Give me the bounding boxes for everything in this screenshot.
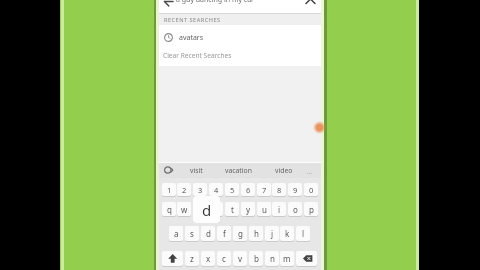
button[interactable]: f bbox=[217, 226, 231, 241]
staticText: g bbox=[238, 228, 243, 239]
button[interactable]: 6 bbox=[241, 183, 255, 196]
staticText: a guy dancing in my car bbox=[176, 0, 255, 5]
staticText: vacation bbox=[225, 166, 252, 175]
button[interactable]: j bbox=[265, 226, 279, 241]
button[interactable]: g bbox=[233, 226, 247, 241]
staticText: e bbox=[198, 204, 203, 215]
button[interactable] bbox=[304, 0, 317, 8]
button[interactable]: video bbox=[270, 163, 298, 178]
staticText: k bbox=[285, 228, 290, 239]
staticText: b bbox=[254, 253, 259, 264]
button[interactable] bbox=[159, 25, 321, 45]
staticText: 8 bbox=[277, 185, 282, 195]
button[interactable]: b bbox=[249, 251, 263, 266]
button[interactable]: i bbox=[272, 202, 286, 216]
staticText: c bbox=[222, 253, 226, 264]
button[interactable] bbox=[159, 45, 321, 66]
button[interactable]: v bbox=[233, 251, 247, 266]
staticText: 5 bbox=[230, 185, 235, 195]
staticText: n bbox=[270, 253, 275, 264]
button[interactable]: 0 bbox=[304, 183, 318, 196]
staticText: 2 bbox=[182, 185, 187, 195]
staticText: l bbox=[302, 228, 305, 239]
staticText: p bbox=[309, 204, 314, 215]
button[interactable] bbox=[163, 0, 175, 8]
button[interactable]: 5 bbox=[225, 183, 239, 196]
staticText: f bbox=[223, 228, 226, 239]
button[interactable]: ... bbox=[300, 163, 318, 178]
button[interactable]: p bbox=[304, 202, 318, 216]
staticText: m bbox=[283, 253, 291, 264]
staticText: 4 bbox=[214, 185, 219, 195]
button[interactable]: 1 bbox=[162, 183, 176, 196]
button[interactable]: s bbox=[185, 226, 199, 241]
staticText: h bbox=[254, 228, 259, 239]
button[interactable]: c bbox=[217, 251, 231, 266]
button[interactable]: t bbox=[225, 202, 239, 216]
button[interactable]: r bbox=[209, 202, 223, 216]
staticText: x bbox=[206, 253, 211, 264]
button[interactable]: 8 bbox=[272, 183, 286, 196]
button[interactable] bbox=[296, 251, 317, 266]
staticText: z bbox=[190, 253, 194, 264]
button[interactable]: d bbox=[201, 226, 215, 241]
button[interactable]: o bbox=[288, 202, 302, 216]
staticText: 9 bbox=[293, 185, 298, 195]
staticText: y bbox=[246, 204, 251, 215]
staticText: d bbox=[202, 200, 212, 220]
staticText: 3 bbox=[198, 185, 203, 195]
staticText: a bbox=[174, 228, 179, 239]
staticText: 7 bbox=[262, 185, 267, 195]
staticText: d bbox=[206, 228, 211, 239]
staticText: u bbox=[262, 204, 267, 215]
button[interactable]: 7 bbox=[257, 183, 271, 196]
staticText: s bbox=[190, 228, 194, 239]
staticText: ... bbox=[307, 167, 312, 175]
button[interactable]: 3 bbox=[193, 183, 207, 196]
staticText: video bbox=[275, 166, 293, 175]
staticText: v bbox=[238, 253, 243, 264]
staticText: 1 bbox=[167, 185, 172, 195]
button[interactable]: n bbox=[265, 251, 279, 266]
staticText: w bbox=[181, 204, 188, 215]
staticText: visit bbox=[190, 166, 203, 175]
button[interactable]: x bbox=[201, 251, 215, 266]
staticText: i bbox=[278, 204, 281, 215]
button[interactable]: y bbox=[241, 202, 255, 216]
staticText: t bbox=[231, 204, 234, 215]
button[interactable]: 4 bbox=[209, 183, 223, 196]
button[interactable]: 9 bbox=[288, 183, 302, 196]
button[interactable]: m bbox=[280, 251, 294, 266]
button[interactable]: k bbox=[280, 226, 294, 241]
staticText: 0 bbox=[309, 185, 314, 195]
button[interactable]: a bbox=[169, 226, 183, 241]
button[interactable]: 2 bbox=[177, 183, 191, 196]
button[interactable] bbox=[162, 251, 183, 266]
staticText: Clear Recent Searches bbox=[163, 51, 232, 60]
staticText: avatars bbox=[179, 33, 204, 43]
button[interactable]: u bbox=[257, 202, 271, 216]
button[interactable]: visit bbox=[183, 163, 209, 178]
button[interactable]: w bbox=[177, 202, 191, 216]
button[interactable]: e bbox=[193, 202, 207, 216]
staticText: o bbox=[293, 204, 298, 215]
button[interactable] bbox=[159, 0, 321, 13]
staticText: 6 bbox=[246, 185, 251, 195]
button[interactable]: h bbox=[249, 226, 263, 241]
staticText: j bbox=[271, 228, 274, 239]
staticText: q bbox=[167, 204, 172, 215]
button[interactable]: vacation bbox=[222, 163, 255, 178]
button[interactable]: q bbox=[162, 202, 176, 216]
button[interactable]: l bbox=[296, 226, 310, 241]
button[interactable] bbox=[164, 165, 175, 175]
staticText: RECENT SEARCHES bbox=[164, 16, 221, 24]
button[interactable]: z bbox=[185, 251, 199, 266]
